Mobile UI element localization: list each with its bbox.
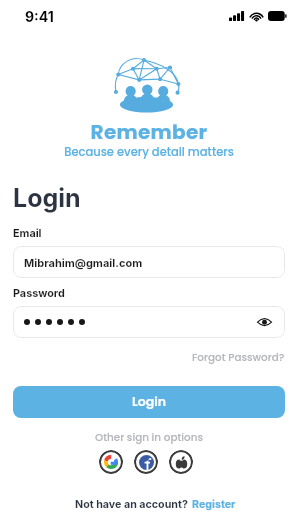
button[interactable]: Mibrahim@gmail.com: [13, 246, 285, 278]
button[interactable]: Show password: [13, 306, 285, 338]
button[interactable]: Register: [192, 498, 236, 511]
button[interactable]: Sign in with Apple: [169, 450, 193, 474]
staticText: Remember: [0, 118, 298, 146]
staticText: Not have an account?: [75, 498, 188, 511]
staticText: Password: [13, 287, 65, 300]
staticText: Other sign in options: [0, 430, 298, 445]
staticText: Login: [132, 393, 167, 411]
button[interactable]: Show password: [254, 312, 274, 332]
staticText: Because every detail matters: [0, 144, 298, 160]
staticText: Login: [13, 183, 81, 213]
staticText: Email: [13, 227, 42, 240]
staticText: Mibrahim@gmail.com: [24, 256, 143, 269]
button[interactable]: Sign in with Google: [99, 450, 123, 474]
staticText: 9:41: [25, 8, 54, 25]
button[interactable]: Login: [13, 386, 285, 418]
button[interactable]: Forgot Password?: [192, 350, 298, 365]
button[interactable]: Sign in with Facebook: [134, 450, 158, 474]
